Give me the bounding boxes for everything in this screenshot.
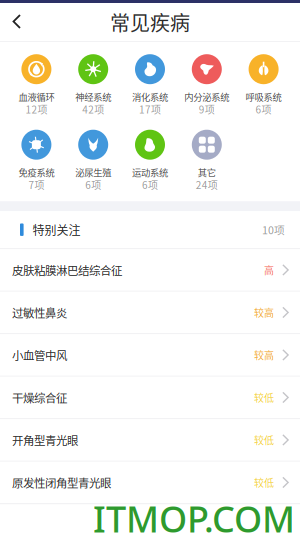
staticText: 高 (264, 263, 274, 277)
staticText: 原发性闭角型青光眼 (12, 474, 111, 491)
button[interactable]: 过敏性鼻炎 (0, 292, 300, 334)
button[interactable]: 泌尿生殖 (65, 130, 122, 190)
staticText: 消化系统 (132, 90, 168, 103)
button[interactable]: 内分泌系统 (178, 54, 235, 114)
button[interactable]: 呼吸系统 (235, 54, 292, 114)
staticText: 特别关注 (33, 221, 81, 238)
button[interactable]: 皮肤粘膜淋巴结综合征 (0, 249, 300, 292)
staticText: 免疫系统 (18, 165, 54, 179)
button[interactable]: 神经系统 (65, 54, 122, 114)
staticText: 17项 (139, 102, 161, 116)
staticText: 9项 (199, 102, 215, 116)
staticText: 皮肤粘膜淋巴结综合征 (12, 262, 122, 278)
staticText: 24项 (196, 177, 218, 192)
button[interactable]: 血液循环 (8, 54, 65, 114)
staticText: 泌尿生殖 (75, 165, 111, 179)
staticText: 较高 (254, 305, 274, 320)
staticText: 6项 (256, 102, 272, 116)
staticText: ITMOP.COM (93, 495, 295, 533)
staticText: 运动系统 (132, 165, 168, 179)
staticText: 12项 (25, 102, 47, 116)
button[interactable]: 开角型青光眼 (0, 419, 300, 462)
staticText: 6项 (142, 177, 158, 192)
staticText: 较低 (254, 433, 274, 447)
staticText: 神经系统 (75, 90, 111, 103)
staticText: 较低 (254, 475, 274, 490)
staticText: 7项 (28, 177, 44, 192)
button[interactable]: 免疫系统 (8, 130, 65, 190)
staticText: 干燥综合征 (12, 389, 67, 406)
staticText: 较低 (254, 390, 274, 405)
staticText: 常见疾病 (110, 7, 190, 36)
staticText: 较高 (254, 348, 274, 362)
button[interactable]: 小血管中风 (0, 334, 300, 377)
staticText: 过敏性鼻炎 (12, 304, 67, 321)
button[interactable]: 其它 (178, 130, 235, 190)
staticText: 血液循环 (18, 90, 54, 103)
staticText: 内分泌系统 (184, 90, 229, 103)
staticText: 开角型青光眼 (12, 432, 78, 448)
staticText: 10项 (262, 222, 285, 237)
staticText: 呼吸系统 (246, 90, 282, 103)
staticText: 42项 (82, 102, 104, 116)
button[interactable]: 干燥综合征 (0, 377, 300, 419)
button[interactable]: 消化系统 (122, 54, 178, 114)
button[interactable]: Back (0, 4, 34, 40)
staticText: 6项 (85, 177, 101, 192)
staticText: 小血管中风 (12, 347, 67, 363)
button[interactable]: 运动系统 (122, 130, 178, 190)
staticText: 其它 (198, 165, 216, 179)
button[interactable]: 原发性闭角型青光眼 (0, 462, 300, 504)
